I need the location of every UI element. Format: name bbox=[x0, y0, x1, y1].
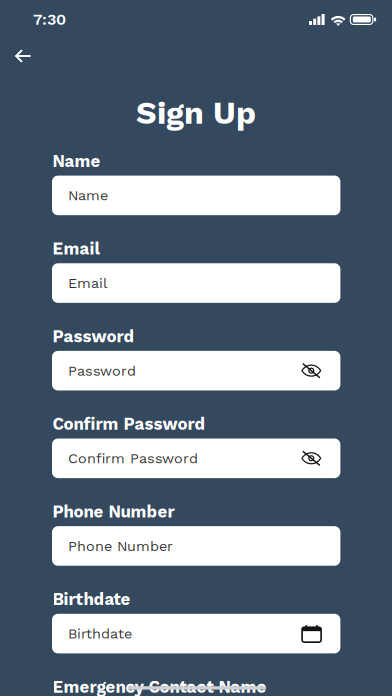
button[interactable]: Back bbox=[3, 38, 44, 74]
staticText: Name bbox=[68, 187, 108, 204]
staticText: Confirm Password bbox=[68, 450, 198, 467]
button[interactable]: Name bbox=[52, 176, 340, 215]
staticText: Name bbox=[52, 151, 100, 171]
staticText: 7:30 bbox=[33, 10, 66, 29]
staticText: Phone Number bbox=[68, 537, 173, 554]
button[interactable]: Password bbox=[52, 351, 340, 390]
staticText: Emergency Contact Name bbox=[52, 677, 266, 696]
staticText: Birthdate bbox=[52, 589, 130, 609]
button[interactable]: Confirm Password bbox=[52, 438, 340, 478]
button[interactable]: Phone Number bbox=[52, 526, 340, 566]
staticText: Sign Up bbox=[136, 94, 256, 131]
button[interactable]: Birthdate bbox=[52, 614, 340, 653]
staticText: Email bbox=[52, 239, 99, 259]
staticText: Password bbox=[68, 362, 136, 379]
staticText: Phone Number bbox=[52, 502, 174, 522]
button[interactable]: Email bbox=[52, 263, 340, 303]
staticText: Email bbox=[68, 275, 107, 291]
staticText: Confirm Password bbox=[52, 414, 205, 434]
staticText: Password bbox=[52, 327, 134, 346]
staticText: Birthdate bbox=[68, 625, 132, 642]
